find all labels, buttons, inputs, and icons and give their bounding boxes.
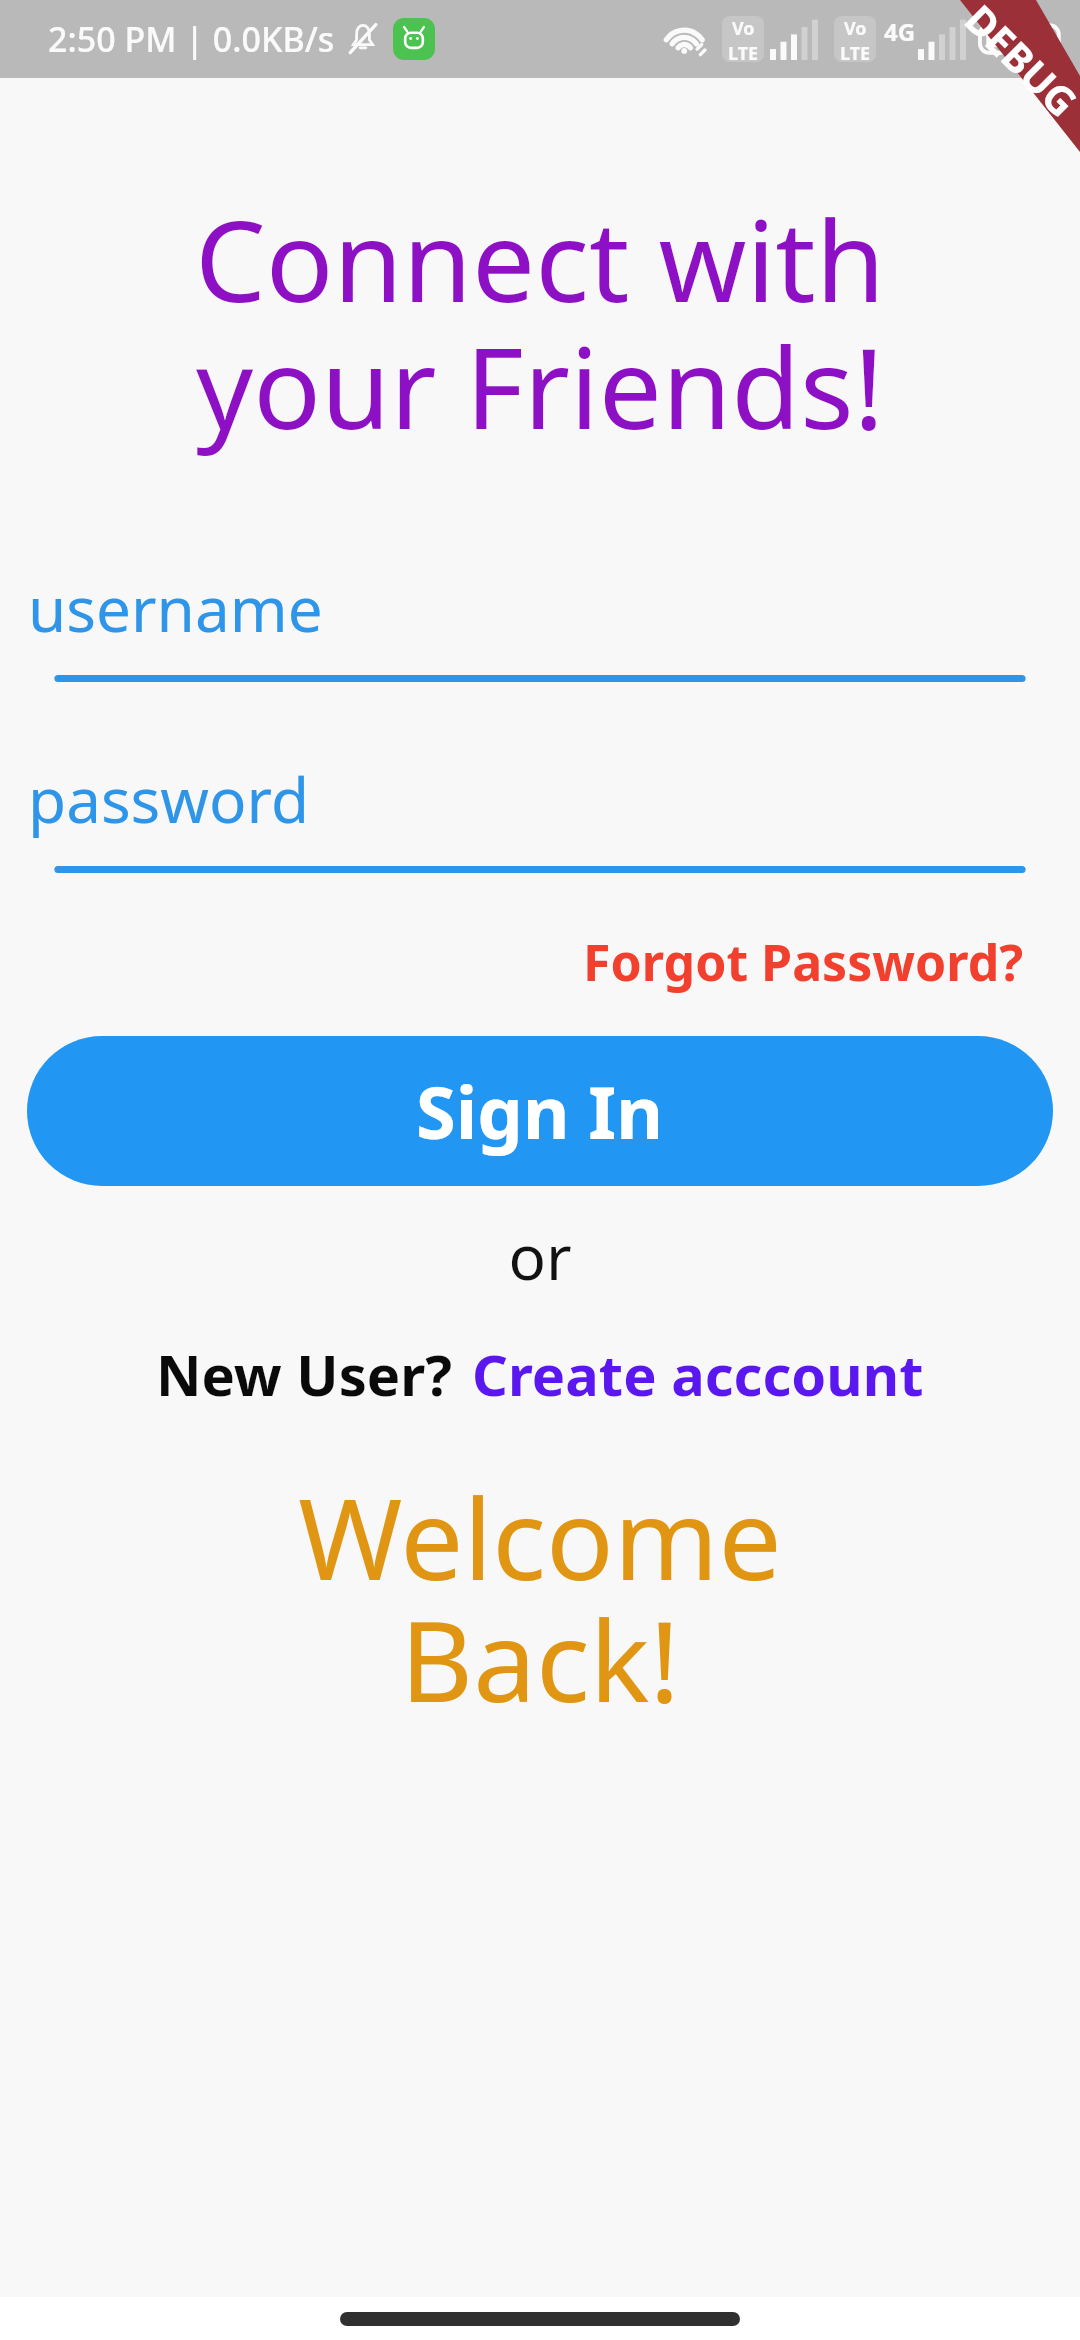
- staticText: Welcome Back!: [0, 1460, 1080, 1735]
- staticText: password: [28, 757, 310, 841]
- staticText: 31: [1015, 21, 1046, 58]
- button[interactable]: Sign In: [27, 1036, 1053, 1186]
- button[interactable]: password: [0, 757, 1080, 874]
- staticText: Sign In: [416, 1062, 664, 1160]
- staticText: Connect with your Friends!: [0, 182, 1080, 462]
- staticText: username: [28, 566, 323, 650]
- button[interactable]: username: [0, 566, 1080, 683]
- staticText: LTE: [840, 41, 871, 62]
- button[interactable]: Create acccount: [472, 1336, 924, 1412]
- staticText: Vo: [844, 16, 867, 41]
- staticText: Vo: [732, 16, 755, 41]
- staticText: 2:50 PM | 0.0KB/s: [48, 16, 335, 62]
- staticText: New User?: [156, 1336, 452, 1412]
- staticText: 4G: [884, 15, 916, 48]
- other: Debug build banner: [880, 0, 1080, 200]
- staticText: or: [0, 1214, 1080, 1298]
- staticText: DEBUG: [954, 0, 1080, 128]
- button[interactable]: Forgot Password?: [577, 922, 1030, 1002]
- staticText: LTE: [728, 41, 759, 62]
